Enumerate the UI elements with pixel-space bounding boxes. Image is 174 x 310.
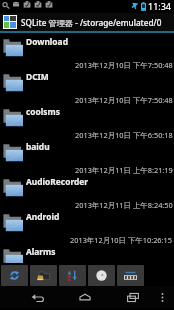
staticText: 2013年12月11日 上午8:21:19 <box>75 165 173 175</box>
staticText: 2013年12月10日 下午7:50:48 <box>75 95 173 105</box>
staticText: DCIM <box>26 71 49 82</box>
button[interactable]: AudioRecorder <box>0 173 174 208</box>
staticText: 2013年12月10日 下午7:50:48 <box>75 60 173 70</box>
button[interactable]: Android <box>0 208 174 243</box>
button[interactable]: Recents <box>109 286 157 308</box>
button[interactable]: Refresh <box>1 265 28 286</box>
staticText: coolsms <box>26 106 60 117</box>
button[interactable]: baidu <box>0 138 174 173</box>
staticText: Download <box>26 36 68 47</box>
button[interactable]: More options <box>157 286 168 308</box>
staticText: 11:34 <box>148 0 172 12</box>
staticText: 2013年12月10日 下午6:50:18 <box>75 130 173 140</box>
staticText: baidu <box>26 141 50 152</box>
staticText: 2013年12月11日 上午8:24:50 <box>75 200 173 210</box>
button[interactable]: DCIM <box>0 68 174 103</box>
staticText: SQLite 管理器 - /storage/emulated/0 <box>21 17 162 28</box>
button[interactable]: More <box>117 265 144 286</box>
button[interactable]: Home <box>61 286 109 308</box>
button[interactable]: Alarms <box>0 243 174 263</box>
staticText: Alarms <box>26 246 56 257</box>
button[interactable]: Back <box>13 286 61 308</box>
button[interactable]: New folder <box>30 265 57 286</box>
button[interactable]: Download <box>0 33 174 68</box>
button[interactable]: Select <box>88 265 115 286</box>
staticText: Android <box>26 211 60 222</box>
button[interactable]: Sort <box>59 265 86 286</box>
button[interactable]: coolsms <box>0 103 174 138</box>
staticText: 2013年12月10日 下午10:26:15 <box>70 235 173 245</box>
staticText: AudioRecorder <box>26 176 89 187</box>
